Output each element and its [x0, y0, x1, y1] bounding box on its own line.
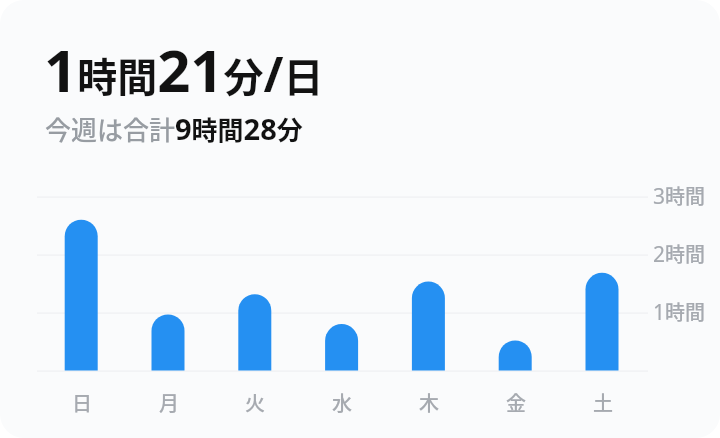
- button[interactable]: 水: [298, 190, 385, 415]
- button[interactable]: 日: [38, 190, 125, 415]
- button[interactable]: 木: [385, 190, 472, 415]
- staticText: 水: [332, 388, 352, 417]
- button[interactable]: 金: [472, 190, 559, 415]
- staticText: 3時間: [653, 181, 706, 210]
- staticText: 金: [506, 388, 526, 417]
- staticText: 火: [245, 388, 265, 417]
- staticText: 木: [419, 388, 439, 417]
- staticText: 月: [159, 388, 179, 417]
- button[interactable]: 月: [125, 190, 212, 415]
- staticText: 2時間: [653, 239, 706, 268]
- staticText: 日: [72, 388, 92, 417]
- staticText: 1時間21分/日: [44, 30, 324, 109]
- button[interactable]: 土: [559, 190, 646, 415]
- staticText: 今週は合計9時間28分: [45, 109, 303, 148]
- staticText: 1時間: [653, 297, 706, 326]
- button[interactable]: 火: [211, 190, 298, 415]
- staticText: 土: [593, 388, 613, 417]
